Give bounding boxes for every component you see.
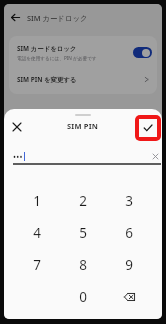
staticText: SIM カードロック	[27, 13, 88, 23]
button[interactable]: SIM PIN を変更する	[9, 67, 157, 94]
button[interactable]: 4	[14, 217, 60, 249]
button[interactable]: 3	[106, 185, 152, 217]
staticText: 8	[79, 256, 87, 274]
button[interactable]: SIM lock toggle	[133, 47, 152, 58]
other: Backspace	[106, 281, 152, 313]
button[interactable]: 9	[106, 249, 152, 281]
button[interactable]: 2	[60, 185, 106, 217]
button[interactable]: Close	[9, 119, 25, 135]
button[interactable]: Back	[7, 9, 24, 26]
staticText: 電話を使用するには、PIN が必要です	[17, 55, 97, 61]
staticText: SIM カードをロック	[17, 44, 77, 53]
staticText: 1	[33, 192, 41, 210]
staticText: 0	[79, 288, 87, 306]
button[interactable]: 5	[60, 217, 106, 249]
button[interactable]: Confirm	[139, 119, 157, 137]
staticText: •••	[13, 151, 23, 162]
button[interactable]: Clear	[150, 151, 161, 162]
staticText: 6	[125, 224, 133, 242]
button[interactable]: 6	[106, 217, 152, 249]
staticText: SIM PIN を変更する	[17, 75, 143, 84]
staticText: 3	[125, 192, 133, 210]
staticText: 7	[33, 256, 41, 274]
staticText: 5	[79, 224, 87, 242]
button[interactable]: 0	[60, 281, 106, 313]
staticText: SIM PIN	[67, 121, 99, 131]
staticText: 2	[79, 192, 87, 210]
button[interactable]: Backspace	[106, 281, 152, 313]
button[interactable]: SIM カードをロック	[9, 36, 157, 67]
button[interactable]: 7	[14, 249, 60, 281]
staticText: 4	[33, 224, 41, 242]
button[interactable]: 8	[60, 249, 106, 281]
staticText: 9	[125, 256, 133, 274]
button[interactable]: 1	[14, 185, 60, 217]
